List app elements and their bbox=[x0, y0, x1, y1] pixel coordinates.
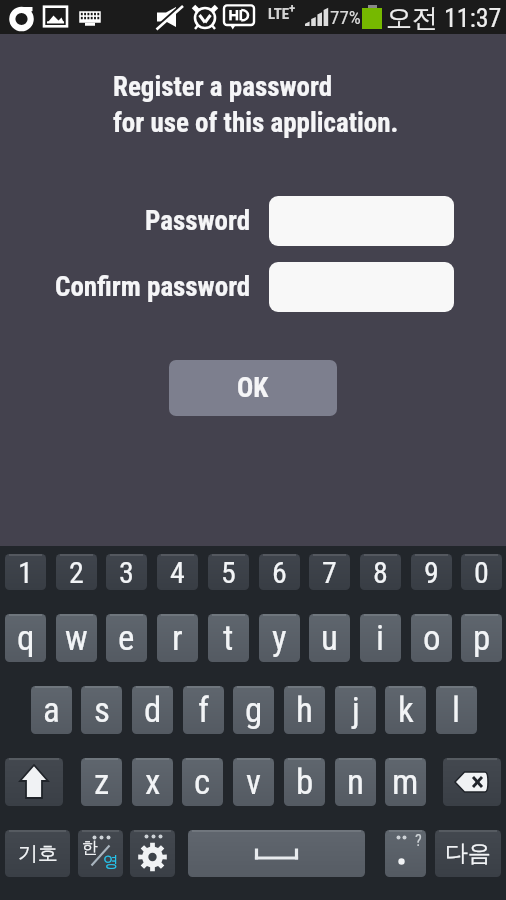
button[interactable]: 7 bbox=[309, 554, 350, 590]
staticText: 한 bbox=[82, 838, 98, 858]
staticText: 기호 bbox=[18, 841, 58, 866]
staticText: t bbox=[223, 618, 234, 659]
button[interactable]: g bbox=[233, 686, 274, 734]
button[interactable]: q bbox=[5, 614, 46, 662]
staticText: v bbox=[246, 762, 261, 803]
button[interactable]: b bbox=[284, 758, 325, 806]
button[interactable]: t bbox=[208, 614, 249, 662]
button[interactable]: 6 bbox=[259, 554, 300, 590]
staticText: a bbox=[43, 690, 60, 731]
button[interactable]: 기호 bbox=[5, 830, 70, 877]
staticText: o bbox=[423, 618, 441, 659]
button[interactable]: 1 bbox=[5, 554, 46, 590]
button[interactable]: Period bbox=[385, 830, 426, 877]
button[interactable]: e bbox=[106, 614, 147, 662]
button[interactable]: 9 bbox=[411, 554, 452, 590]
staticText: Password bbox=[145, 205, 251, 237]
button[interactable]: 다음 bbox=[435, 830, 501, 877]
staticText: g bbox=[245, 690, 263, 731]
button[interactable]: Backspace bbox=[443, 758, 501, 806]
staticText: i bbox=[376, 618, 385, 659]
staticText: for use of this application. bbox=[113, 107, 399, 139]
staticText: q bbox=[17, 618, 35, 659]
staticText: 6 bbox=[272, 555, 287, 590]
staticText: 다음 bbox=[445, 839, 491, 868]
staticText: 5 bbox=[221, 555, 236, 590]
button[interactable]: j bbox=[335, 686, 376, 734]
staticText: s bbox=[94, 690, 110, 731]
staticText: 0 bbox=[474, 555, 489, 590]
button[interactable]: Password field bbox=[269, 196, 454, 246]
staticText: l bbox=[452, 690, 461, 731]
staticText: Confirm password bbox=[55, 271, 251, 303]
staticText: 1 bbox=[18, 555, 33, 590]
staticText: OK bbox=[237, 372, 269, 404]
staticText: d bbox=[144, 690, 162, 731]
staticText: p bbox=[473, 618, 491, 659]
button[interactable]: f bbox=[183, 686, 224, 734]
staticText: 7 bbox=[322, 555, 337, 590]
button[interactable]: z bbox=[81, 758, 122, 806]
button[interactable]: m bbox=[385, 758, 426, 806]
button[interactable]: 3 bbox=[106, 554, 147, 590]
staticText: y bbox=[272, 618, 287, 659]
button[interactable]: a bbox=[31, 686, 72, 734]
button[interactable]: i bbox=[360, 614, 401, 662]
button[interactable]: k bbox=[385, 686, 426, 734]
staticText: e bbox=[118, 618, 135, 659]
button[interactable]: o bbox=[411, 614, 452, 662]
button[interactable]: Keyboard settings bbox=[130, 830, 175, 877]
staticText: Register a password bbox=[113, 71, 333, 103]
button[interactable]: Space bbox=[188, 830, 365, 877]
button[interactable]: l bbox=[436, 686, 477, 734]
staticText: h bbox=[296, 690, 313, 731]
button[interactable]: v bbox=[233, 758, 274, 806]
staticText: r bbox=[172, 618, 183, 659]
staticText: ? bbox=[415, 831, 422, 850]
button[interactable]: d bbox=[132, 686, 173, 734]
staticText: LTE bbox=[268, 5, 290, 23]
staticText: 4 bbox=[170, 555, 185, 590]
button[interactable]: 8 bbox=[360, 554, 401, 590]
button[interactable]: OK bbox=[169, 360, 337, 416]
button[interactable]: 2 bbox=[56, 554, 97, 590]
staticText: w bbox=[65, 618, 88, 659]
button[interactable]: Shift bbox=[5, 758, 63, 806]
button[interactable]: Change language bbox=[78, 830, 123, 877]
staticText: m bbox=[392, 762, 419, 803]
button[interactable]: h bbox=[284, 686, 325, 734]
button[interactable]: y bbox=[259, 614, 300, 662]
button[interactable]: 4 bbox=[157, 554, 198, 590]
staticText: b bbox=[296, 762, 314, 803]
staticText: z bbox=[94, 762, 110, 803]
button[interactable]: r bbox=[157, 614, 198, 662]
staticText: k bbox=[398, 690, 414, 731]
staticText: 오전 11:37 bbox=[386, 2, 502, 35]
staticText: c bbox=[194, 762, 211, 803]
staticText: 8 bbox=[373, 555, 388, 590]
button[interactable]: Confirm password field bbox=[269, 262, 454, 312]
button[interactable]: 0 bbox=[461, 554, 502, 590]
staticText: 영 bbox=[103, 852, 119, 872]
staticText: u bbox=[321, 618, 338, 659]
staticText: x bbox=[145, 762, 161, 803]
staticText: 9 bbox=[424, 555, 439, 590]
button[interactable]: x bbox=[132, 758, 173, 806]
staticText: 3 bbox=[119, 555, 134, 590]
staticText: + bbox=[289, 1, 296, 16]
button[interactable]: p bbox=[461, 614, 502, 662]
staticText: 77% bbox=[330, 6, 361, 28]
staticText: 2 bbox=[69, 555, 84, 590]
button[interactable]: w bbox=[56, 614, 97, 662]
button[interactable]: c bbox=[182, 758, 223, 806]
staticText: j bbox=[352, 690, 360, 731]
button[interactable]: n bbox=[335, 758, 376, 806]
button[interactable]: 5 bbox=[208, 554, 249, 590]
button[interactable]: u bbox=[309, 614, 350, 662]
staticText: f bbox=[198, 690, 210, 731]
button[interactable]: s bbox=[81, 686, 122, 734]
staticText: n bbox=[347, 762, 364, 803]
